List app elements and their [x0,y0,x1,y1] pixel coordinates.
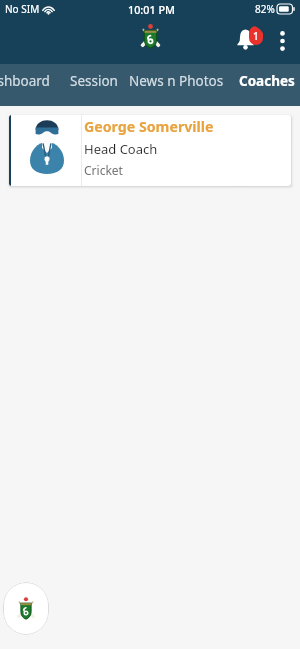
button[interactable]: More options [269,28,295,54]
button[interactable]: News n Photos [123,64,230,97]
button[interactable]: Notifications [233,25,265,57]
staticText: 1 [253,29,259,43]
button[interactable]: Dashboard [0,64,59,97]
button[interactable]: Session [62,64,125,97]
staticText: 82% [255,2,275,16]
staticText: 10:01 PM [128,2,175,17]
button[interactable]: George Somerville [9,115,291,186]
staticText: Dashboard [0,72,50,90]
staticText: News n Photos [129,72,224,90]
staticText: Cricket [84,162,123,178]
staticText: Session [70,72,118,90]
button[interactable]: Club logo [140,28,161,54]
staticText: No SIM [5,2,40,16]
staticText: George Somerville [84,117,214,136]
button[interactable]: Coaches [232,64,300,97]
staticText: Coaches [239,72,295,90]
staticText: Head Coach [84,140,158,158]
button[interactable]: Club home [3,582,49,635]
